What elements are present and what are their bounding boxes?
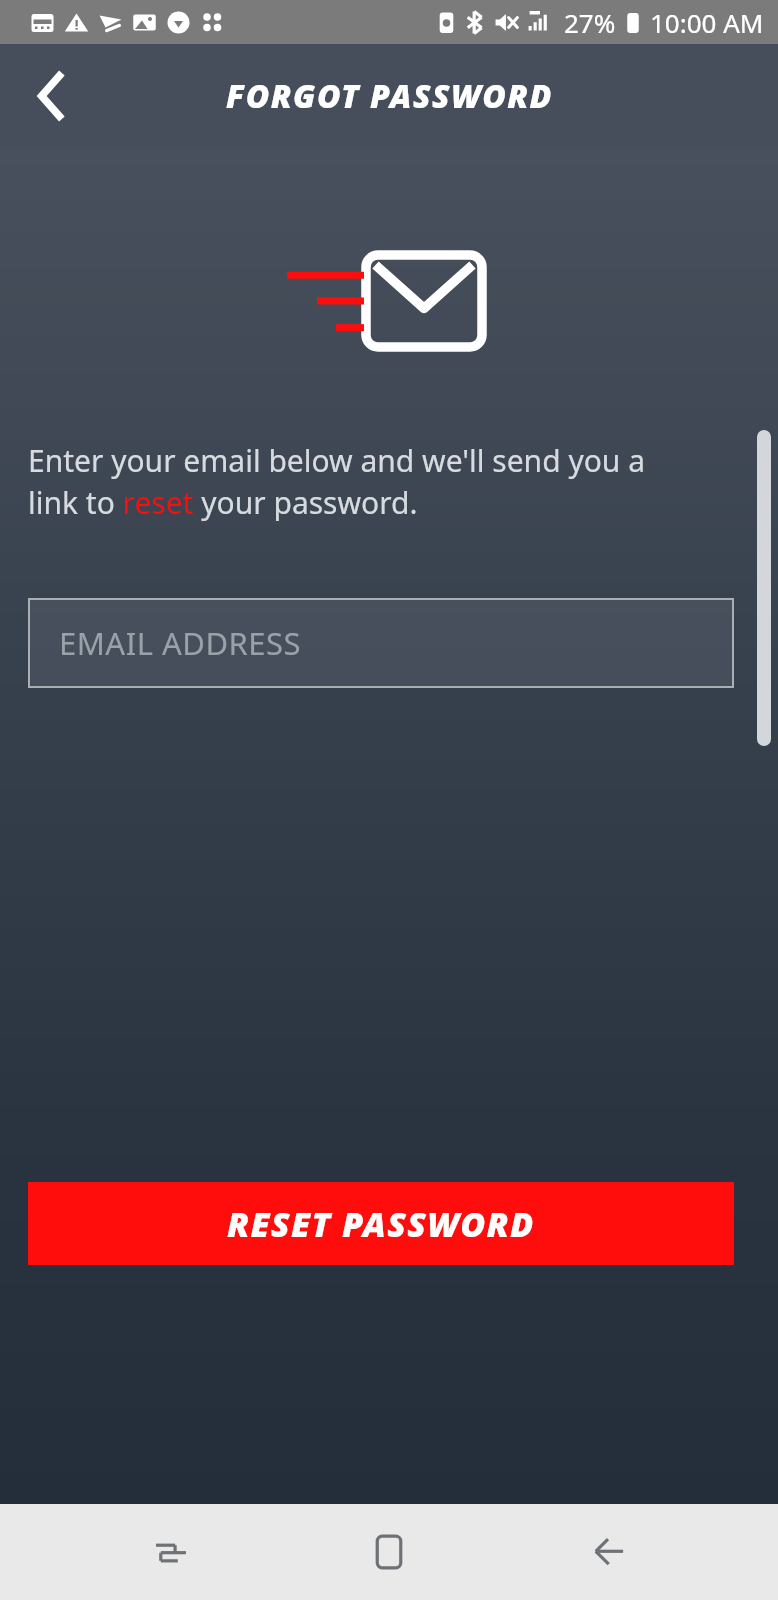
button[interactable]: Back	[8, 52, 96, 140]
button[interactable]: Recent apps	[123, 1504, 219, 1600]
button[interactable]: Home	[341, 1504, 437, 1600]
staticText: EMAIL ADDRESS	[59, 622, 302, 664]
staticText: 10:00 AM	[650, 5, 764, 40]
staticText: Enter your email below and we'll send yo…	[28, 440, 668, 523]
button[interactable]: RESET PASSWORD	[28, 1182, 734, 1265]
button[interactable]: Back	[560, 1504, 656, 1600]
staticText: FORGOT PASSWORD	[226, 74, 553, 118]
staticText: RESET PASSWORD	[227, 1201, 535, 1247]
button[interactable]: EMAIL ADDRESS	[28, 598, 734, 688]
staticText: 27%	[564, 5, 616, 40]
